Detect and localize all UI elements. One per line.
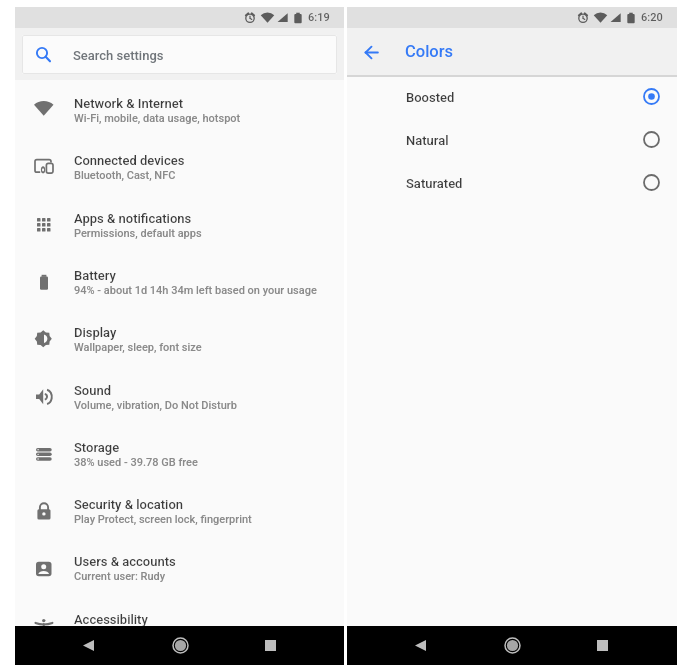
- button[interactable]: Natural: [347, 122, 677, 165]
- staticText: Colors: [405, 42, 454, 61]
- button[interactable]: Home: [157, 626, 203, 665]
- staticText: Users & accounts: [74, 554, 176, 569]
- button[interactable]: Search settings: [22, 35, 337, 74]
- button[interactable]: Accessibility: [15, 599, 344, 656]
- button[interactable]: Back: [65, 626, 111, 665]
- button[interactable]: Battery: [15, 255, 344, 312]
- staticText: 6:20: [641, 11, 663, 24]
- staticText: Battery: [74, 268, 116, 283]
- staticText: Display: [74, 325, 117, 340]
- staticText: Natural: [406, 133, 449, 148]
- staticText: 38% used - 39.78 GB free: [74, 456, 198, 469]
- staticText: Network & Internet: [74, 96, 184, 111]
- staticText: 6:19: [308, 11, 330, 24]
- button[interactable]: Sound: [15, 370, 344, 427]
- staticText: Permissions, default apps: [74, 227, 202, 240]
- button[interactable]: Users & accounts: [15, 541, 344, 598]
- staticText: Search settings: [73, 48, 164, 63]
- staticText: Sound: [74, 383, 112, 398]
- button[interactable]: Back: [350, 31, 392, 73]
- staticText: Screen readers, display, interaction con…: [74, 628, 289, 641]
- button[interactable]: Connected devices: [15, 140, 344, 197]
- button[interactable]: Recents: [247, 626, 293, 665]
- button[interactable]: Recents: [579, 626, 625, 665]
- staticText: Current user: Rudy: [74, 570, 166, 583]
- staticText: Apps & notifications: [74, 211, 192, 226]
- staticText: Boosted: [406, 90, 455, 105]
- staticText: Security & location: [74, 497, 183, 512]
- button[interactable]: Storage: [15, 427, 344, 484]
- button[interactable]: Network & Internet: [15, 83, 344, 140]
- staticText: Connected devices: [74, 153, 185, 168]
- staticText: Play Protect, screen lock, fingerprint: [74, 513, 252, 526]
- button[interactable]: Saturated: [347, 165, 677, 208]
- button[interactable]: Apps & notifications: [15, 198, 344, 255]
- staticText: Storage: [74, 440, 120, 455]
- button[interactable]: Display: [15, 312, 344, 369]
- staticText: Volume, vibration, Do Not Disturb: [74, 399, 237, 412]
- staticText: Accessibility: [74, 612, 148, 627]
- button[interactable]: Boosted: [347, 79, 677, 122]
- staticText: Bluetooth, Cast, NFC: [74, 169, 176, 182]
- button[interactable]: Back: [397, 626, 443, 665]
- staticText: 94% - about 1d 14h 34m left based on you…: [74, 284, 317, 297]
- staticText: Wallpaper, sleep, font size: [74, 341, 202, 354]
- button[interactable]: Home: [489, 626, 535, 665]
- staticText: Wi-Fi, mobile, data usage, hotspot: [74, 112, 241, 125]
- button[interactable]: Security & location: [15, 484, 344, 541]
- staticText: Saturated: [406, 176, 463, 191]
